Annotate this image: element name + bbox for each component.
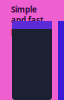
staticText: Simple and fast payouts <box>11 4 43 36</box>
